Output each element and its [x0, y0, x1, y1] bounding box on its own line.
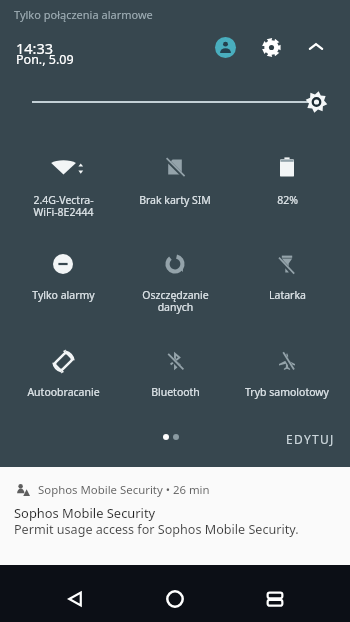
- button[interactable]: Oszczędzanie danych: [119, 250, 231, 318]
- button[interactable]: Back: [51, 575, 99, 622]
- staticText: 82%: [277, 193, 298, 207]
- staticText: EDYTUJ: [286, 431, 335, 447]
- staticText: 2.4G-Vectra- WiFi-8E2444: [33, 193, 94, 219]
- staticText: Tylko połączenia alarmowe: [14, 7, 153, 22]
- button[interactable]: 2.4G-Vectra- WiFi-8E2444: [7, 153, 119, 223]
- staticText: Tylko alarmy: [32, 288, 95, 302]
- staticText: Latarka: [269, 288, 306, 302]
- staticText: Oszczędzanie danych: [142, 288, 209, 314]
- button[interactable]: Sophos Mobile Security • 26 min: [0, 467, 350, 565]
- staticText: Autoobracanie: [27, 385, 100, 399]
- staticText: 14:33: [16, 38, 54, 58]
- staticText: Bluetooth: [151, 385, 200, 399]
- button[interactable]: Brak karty SIM: [119, 153, 231, 211]
- staticText: Brak karty SIM: [139, 193, 211, 207]
- button[interactable]: Settings: [255, 31, 287, 63]
- button[interactable]: Brightness: [0, 88, 350, 116]
- button[interactable]: 82%: [231, 153, 343, 211]
- staticText: Permit usage access for Sophos Mobile Se…: [14, 521, 299, 538]
- staticText: Tryb samolotowy: [245, 385, 329, 399]
- button[interactable]: Autoobracanie: [7, 347, 119, 403]
- button[interactable]: Latarka: [231, 250, 343, 306]
- button[interactable]: User: [209, 31, 241, 63]
- button[interactable]: Bluetooth: [119, 347, 231, 403]
- staticText: Sophos Mobile Security: [14, 504, 156, 522]
- button[interactable]: Collapse panel: [300, 31, 332, 63]
- button[interactable]: Tylko alarmy: [7, 250, 119, 306]
- staticText: Pon., 5.09: [16, 51, 74, 68]
- button[interactable]: Recent apps: [251, 575, 299, 622]
- button[interactable]: Tryb samolotowy: [231, 347, 343, 403]
- button[interactable]: EDYTUJ: [278, 425, 343, 453]
- staticText: Sophos Mobile Security • 26 min: [38, 482, 210, 498]
- button[interactable]: Home: [151, 575, 199, 622]
